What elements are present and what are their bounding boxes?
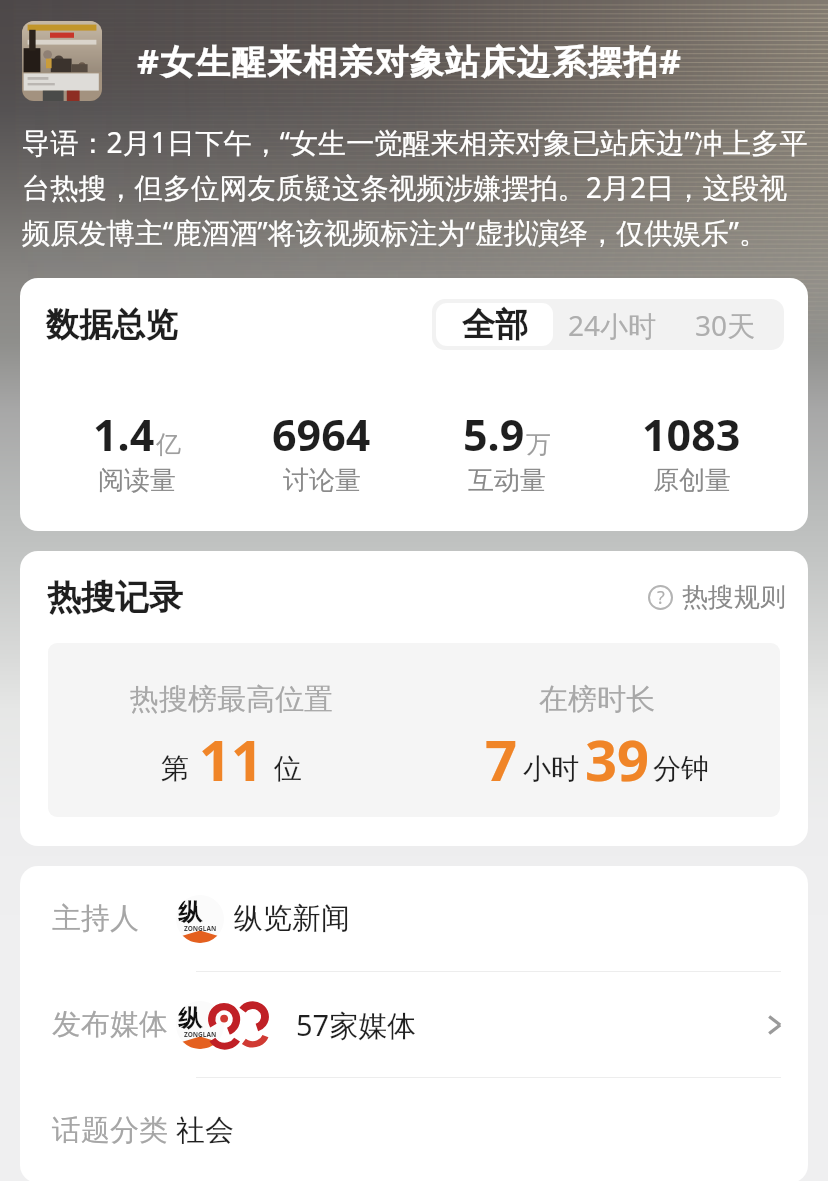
other: Open media list <box>765 1015 781 1035</box>
staticText: 39 <box>585 721 650 797</box>
staticText: ZONGLAN <box>184 1030 217 1039</box>
staticText: 纵览新闻 <box>234 900 350 937</box>
button[interactable]: 在榜时长 <box>414 643 780 817</box>
staticText: 热搜榜最高位置 <box>130 681 333 718</box>
button[interactable]: #女生醒来相亲对象站床边系摆拍# <box>137 38 683 84</box>
button[interactable]: 热搜榜最高位置 <box>48 643 414 817</box>
staticText: 原创量 <box>653 464 731 497</box>
staticText: 话题分类 <box>52 1112 176 1149</box>
staticText: 24小时 <box>568 306 657 344</box>
staticText: 阅读量 <box>98 464 176 497</box>
staticText: 57家媒体 <box>296 1005 417 1045</box>
button[interactable]: 1083 <box>599 405 784 497</box>
staticText: 1.4 <box>93 405 155 464</box>
staticText: 分钟 <box>653 751 709 786</box>
staticText: 30天 <box>695 306 756 344</box>
staticText: 万 <box>526 429 551 460</box>
staticText: 热搜规则 <box>682 581 786 614</box>
staticText: 导语：2月1日下午，“女生一觉醒来相亲对象已站床边”冲上多平台热搜，但多位网友质… <box>22 123 810 252</box>
staticText: 5.9 <box>463 405 525 464</box>
staticText: 数据总览 <box>46 304 178 346</box>
button[interactable]: 话题分类 <box>52 1078 808 1181</box>
button[interactable]: 5.9 <box>414 405 599 497</box>
staticText: 亿 <box>156 429 181 460</box>
button[interactable]: 主持人 <box>52 866 808 971</box>
button[interactable]: 6964 <box>229 405 414 497</box>
staticText: 发布媒体 <box>52 1006 176 1043</box>
button[interactable]: 发布媒体 <box>52 972 808 1077</box>
staticText: 纵 <box>178 897 202 927</box>
staticText: 热搜记录 <box>47 576 183 619</box>
staticText: 讨论量 <box>283 464 361 497</box>
staticText: 社会 <box>176 1112 234 1149</box>
button[interactable]: 全部 <box>436 303 553 346</box>
staticText: 纵 <box>178 1003 202 1033</box>
staticText: 7 <box>485 721 518 797</box>
staticText: 6964 <box>272 405 371 464</box>
staticText: 11 <box>199 721 264 797</box>
staticText: 在榜时长 <box>539 681 655 718</box>
button[interactable]: 30天 <box>671 303 780 346</box>
staticText: 位 <box>274 751 302 786</box>
staticText: 1083 <box>642 405 741 464</box>
button[interactable]: 24小时 <box>553 303 671 346</box>
button[interactable]: 1.4 <box>44 405 229 497</box>
staticText: 小时 <box>523 751 579 786</box>
staticText: 全部 <box>462 304 528 346</box>
staticText: 主持人 <box>52 900 176 937</box>
button[interactable]: ? <box>638 573 808 622</box>
button[interactable]: Topic thumbnail <box>22 21 102 101</box>
staticText: 第 <box>161 751 189 786</box>
staticText: ? <box>657 585 665 610</box>
staticText: 互动量 <box>468 464 546 497</box>
staticText: ZONGLAN <box>184 924 217 933</box>
